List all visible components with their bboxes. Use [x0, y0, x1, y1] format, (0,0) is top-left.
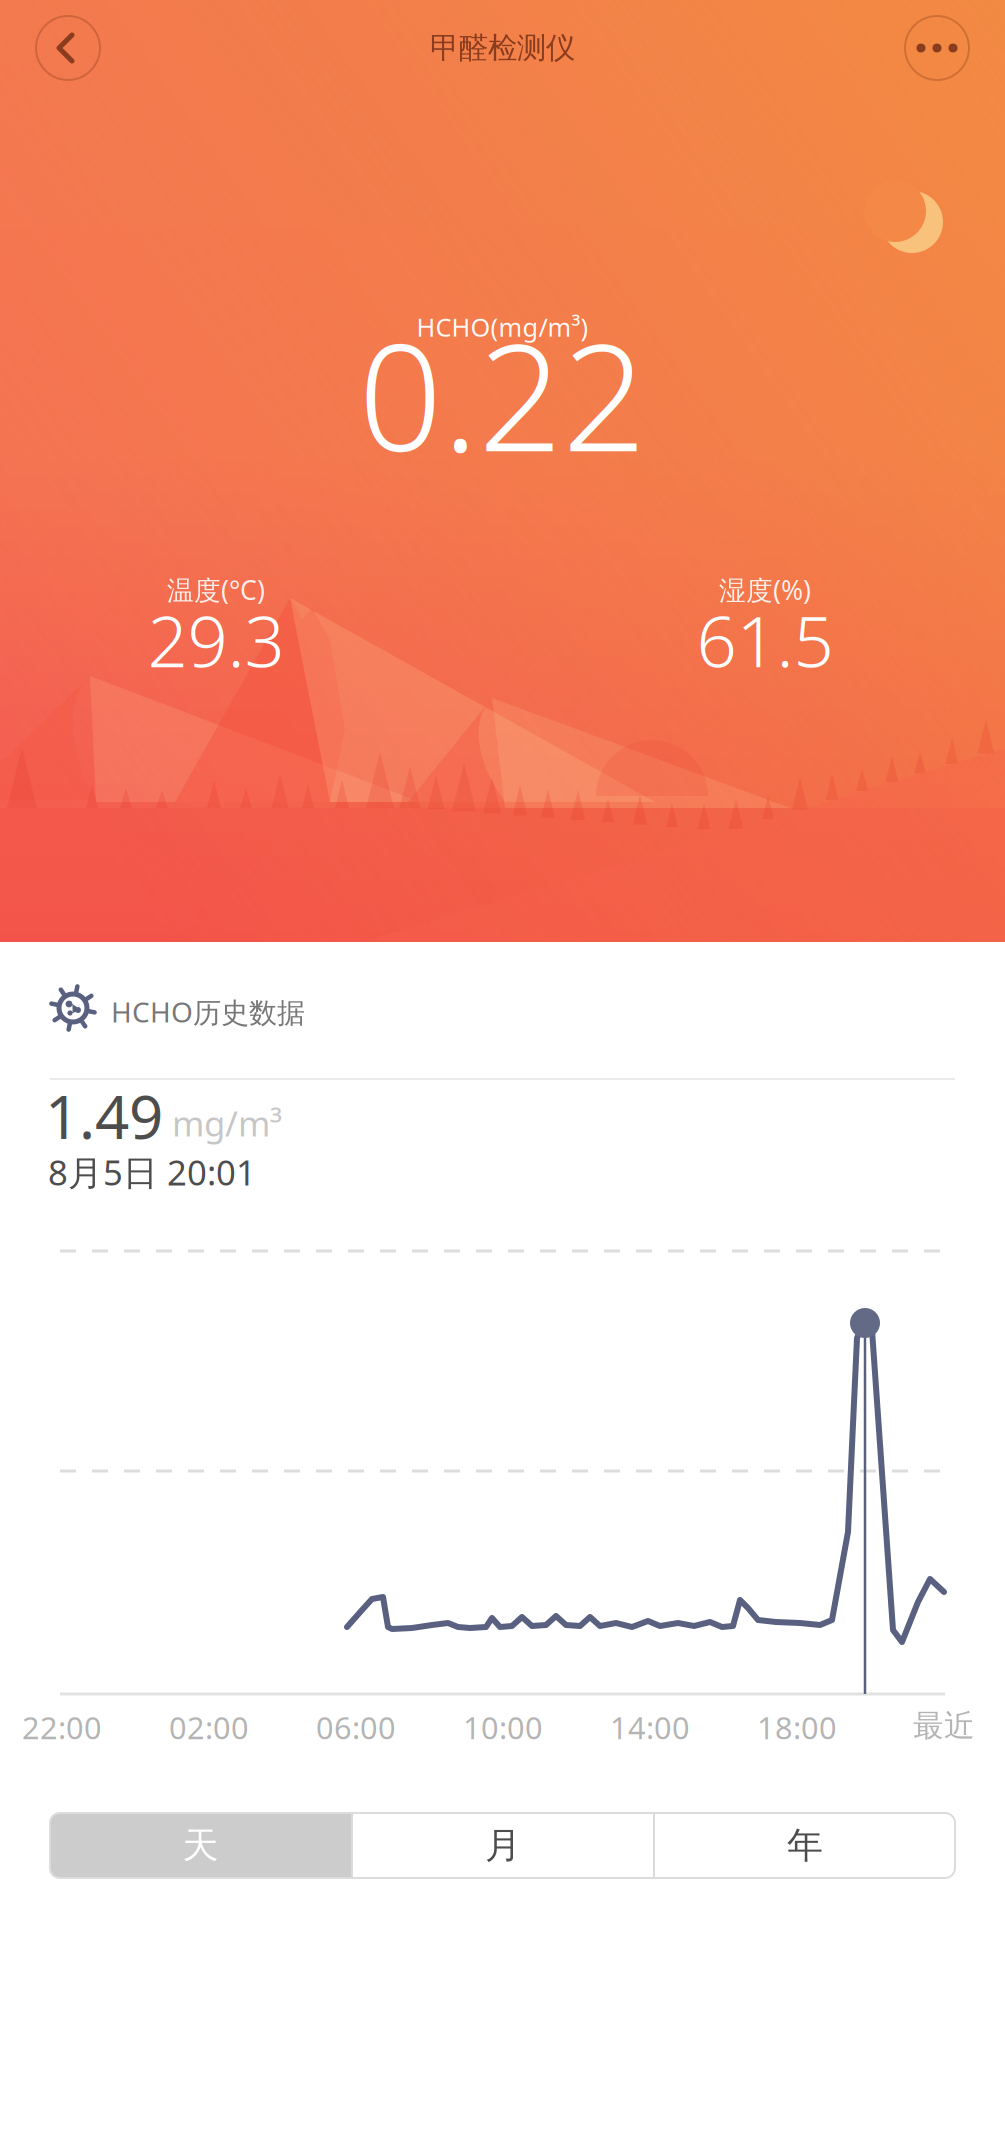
- staticText: 甲醛检测仪: [430, 30, 575, 66]
- staticText: 29.3: [147, 593, 284, 687]
- staticText: 02:00: [169, 1707, 249, 1748]
- staticText: 0.22: [358, 297, 646, 492]
- staticText: 月: [485, 1823, 521, 1868]
- staticText: 14:00: [610, 1707, 690, 1748]
- staticText: 1.49: [45, 1076, 163, 1156]
- button[interactable]: 年: [655, 1813, 955, 1878]
- button[interactable]: More: [889, 0, 985, 96]
- button[interactable]: 月: [353, 1813, 653, 1878]
- staticText: 10:00: [463, 1707, 543, 1748]
- staticText: HCHO(mg/m³): [416, 310, 588, 344]
- staticText: 温度(°C): [167, 572, 265, 607]
- staticText: 18:00: [757, 1707, 837, 1748]
- staticText: 年: [787, 1823, 823, 1868]
- staticText: 61.5: [696, 593, 833, 687]
- staticText: 8月5日 20:01: [48, 1149, 256, 1195]
- staticText: 最近: [913, 1707, 975, 1745]
- button[interactable]: Back: [20, 0, 116, 96]
- staticText: 22:00: [22, 1707, 102, 1748]
- staticText: 湿度(%): [719, 572, 811, 607]
- staticText: mg/m³: [172, 1100, 282, 1146]
- button[interactable]: 天: [50, 1813, 351, 1878]
- staticText: 天: [182, 1823, 218, 1868]
- staticText: 06:00: [316, 1707, 396, 1748]
- staticText: HCHO历史数据: [111, 993, 305, 1030]
